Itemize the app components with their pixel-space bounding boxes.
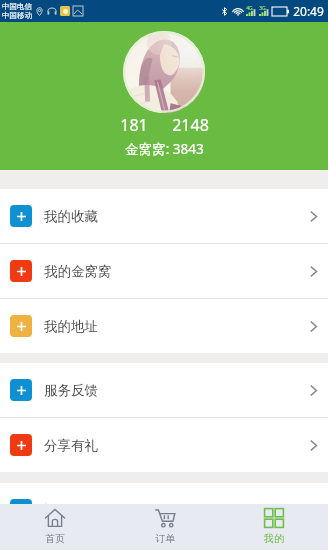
button[interactable]: 我的金窝窝 — [0, 244, 328, 298]
staticText: 中国移动 — [2, 11, 32, 20]
button[interactable]: Profile — [219, 504, 328, 550]
staticText: 服务反馈 — [44, 382, 98, 399]
staticText: 中国电信 — [2, 2, 32, 11]
staticText: 20:49 — [293, 3, 324, 19]
staticText: 金窝窝: 3843 — [125, 140, 204, 158]
staticText: 我的地址 — [44, 318, 98, 335]
other: Home — [45, 508, 65, 528]
staticText: 我的 — [264, 532, 284, 545]
button[interactable]: 我的地址 — [0, 299, 328, 353]
staticText: 4G — [246, 5, 253, 12]
staticText: 我的收藏 — [44, 208, 98, 225]
staticText: 分享有礼 — [44, 437, 98, 454]
staticText: 首页 — [45, 532, 65, 545]
button[interactable]: 服务反馈 — [0, 363, 328, 417]
other: Profile — [264, 508, 284, 528]
staticText: 2148 — [172, 114, 209, 136]
staticText: 我的金窝窝 — [44, 263, 112, 280]
staticText: 181 — [120, 114, 148, 136]
staticText: 3G — [259, 5, 266, 12]
button[interactable]: 分享有礼 — [0, 418, 328, 472]
button[interactable]: Orders — [110, 504, 219, 550]
other: Orders — [155, 508, 175, 528]
button[interactable]: 我的收藏 — [0, 189, 328, 243]
button[interactable]: Home — [0, 504, 110, 550]
button[interactable]: 设置 — [0, 483, 328, 504]
staticText: 订单 — [155, 532, 175, 545]
staticText: 设置 — [44, 502, 71, 504]
